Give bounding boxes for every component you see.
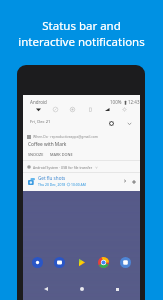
- staticText: Android System · USB for file transfer: [33, 165, 93, 170]
- button[interactable]: App 0: [32, 257, 43, 268]
- staticText: Thu 20 Dec, 2018: [38, 182, 66, 187]
- button[interactable]: Send: [121, 177, 129, 185]
- button[interactable]: Expand: [125, 119, 133, 127]
- staticText: Status bar and: [42, 18, 121, 34]
- staticText: Get flu shots: [38, 175, 66, 181]
- button[interactable]: Settings: [107, 119, 115, 127]
- button[interactable]: Toggle 4: [103, 105, 112, 114]
- button[interactable]: Get flu shots: [23, 173, 140, 189]
- button[interactable]: App 4: [120, 257, 131, 268]
- staticText: 100%: [110, 99, 122, 105]
- button[interactable]: Home: [77, 284, 87, 294]
- button[interactable]: Android System · USB for file transfer: [27, 163, 140, 171]
- button[interactable]: App 3: [98, 257, 109, 268]
- button[interactable]: Back: [41, 284, 51, 294]
- staticText: 12:43: [128, 99, 140, 105]
- button[interactable]: MARK DONE: [50, 152, 73, 157]
- button[interactable]: SNOOZE: [28, 152, 44, 157]
- button[interactable]: App 2: [76, 257, 87, 268]
- button[interactable]: Toggle 2: [68, 105, 77, 114]
- button[interactable]: Toggle 0: [34, 105, 43, 114]
- button[interactable]: Toggle 1: [51, 105, 60, 114]
- staticText: Fri, Dec 21: [30, 119, 51, 125]
- button[interactable]: Add: [129, 177, 138, 186]
- staticText: When.Do · reproductiveapps@gmail.com: [33, 134, 99, 139]
- staticText: interactive notifications: [18, 34, 145, 50]
- button[interactable]: Toggle 3: [86, 105, 95, 114]
- staticText: 10:00 AM: [71, 182, 86, 187]
- staticText: Android: [30, 99, 47, 105]
- button[interactable]: App 1: [54, 257, 65, 268]
- button[interactable]: When.Do · reproductiveapps@gmail.com: [23, 134, 140, 157]
- button[interactable]: Toggle 5: [120, 105, 129, 114]
- button[interactable]: Recent apps: [112, 284, 122, 294]
- staticText: Coffee with Mark: [28, 141, 67, 148]
